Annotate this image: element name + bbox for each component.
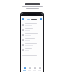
button[interactable] (21, 53, 43, 57)
button[interactable]: Home (22, 66, 27, 72)
button[interactable]: Menu (22, 18, 24, 20)
button[interactable] (21, 47, 43, 52)
button[interactable]: Profile (37, 66, 42, 72)
button[interactable] (21, 22, 43, 27)
button[interactable] (21, 27, 43, 32)
button[interactable] (21, 37, 43, 42)
button[interactable] (21, 42, 43, 47)
button[interactable] (21, 32, 43, 37)
button[interactable]: Search (40, 18, 42, 20)
button[interactable]: Browse (27, 66, 32, 72)
button[interactable]: Library (32, 66, 37, 72)
